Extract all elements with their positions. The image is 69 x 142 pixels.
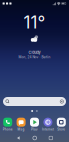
- button[interactable]: Home: [31, 134, 39, 142]
- button[interactable]: Phone: [1, 118, 14, 131]
- staticText: Internet: [42, 128, 54, 131]
- button[interactable]: Recent apps: [47, 134, 55, 142]
- button[interactable]: Play: [28, 118, 41, 131]
- staticText: 11°: [23, 12, 45, 33]
- button[interactable]: Search: [3, 97, 66, 106]
- button[interactable]: Msg: [14, 118, 28, 131]
- button[interactable]: Store: [55, 118, 68, 131]
- button[interactable]: Back: [14, 134, 22, 142]
- staticText: Play: [31, 128, 38, 131]
- staticText: Msg: [18, 128, 25, 131]
- staticText: Cloudy: [28, 50, 40, 55]
- button[interactable]: Internet: [41, 118, 55, 131]
- button[interactable]: 11°: [0, 7, 69, 59]
- staticText: Mon, 24 Nov · Berlin: [18, 55, 50, 59]
- staticText: Phone: [3, 128, 13, 131]
- staticText: Store: [57, 128, 65, 131]
